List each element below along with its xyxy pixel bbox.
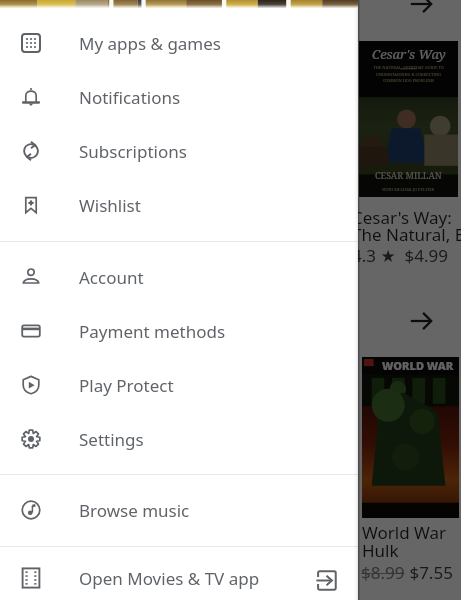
- button[interactable]: Notifications: [0, 70, 358, 124]
- staticText: World War: [362, 521, 447, 544]
- staticText: $8.99: [361, 561, 405, 584]
- button[interactable]: Open Movies & TV app: [0, 551, 358, 600]
- staticText: $7.55: [405, 561, 453, 584]
- button[interactable]: Browse music: [0, 483, 358, 537]
- staticText: The Natural, E…: [352, 223, 461, 246]
- button[interactable]: My apps & games: [0, 16, 358, 70]
- staticText: Wishlist: [79, 194, 141, 217]
- staticText: Open Movies & TV app: [79, 567, 260, 590]
- staticText: 4.3 ★ $4.99: [352, 244, 448, 267]
- button[interactable]: Wishlist: [0, 178, 358, 232]
- staticText: WITH MELISSA JO PELTIER: [382, 187, 435, 192]
- button[interactable]: Open Movies & TV app: [306, 558, 346, 598]
- button[interactable]: Play Protect: [0, 358, 358, 412]
- button[interactable]: See more: [406, 306, 436, 336]
- staticText: Play Protect: [79, 374, 174, 397]
- staticText: My apps & games: [79, 32, 222, 55]
- button[interactable]: See more: [406, 0, 436, 19]
- staticText: CESAR MILLAN: [375, 169, 442, 181]
- button[interactable]: Subscriptions: [0, 124, 358, 178]
- button[interactable]: Payment methods: [0, 304, 358, 358]
- button[interactable]: Account: [0, 250, 358, 304]
- staticText: Settings: [79, 428, 144, 451]
- staticText: Cesar's Way: [372, 45, 446, 63]
- button[interactable]: Settings: [0, 412, 358, 466]
- staticText: Browse music: [79, 499, 190, 522]
- staticText: Payment methods: [79, 320, 226, 343]
- staticText: Subscriptions: [79, 140, 187, 163]
- staticText: Hulk: [362, 539, 399, 562]
- staticText: Notifications: [79, 86, 181, 109]
- staticText: Cesar's Way:: [352, 206, 452, 229]
- staticText: Account: [79, 266, 144, 289]
- staticText: THE NATURAL, EVERYDAY GUIDE TO UNDERSTAN…: [373, 65, 444, 83]
- staticText: WORLD WAR: [382, 358, 454, 373]
